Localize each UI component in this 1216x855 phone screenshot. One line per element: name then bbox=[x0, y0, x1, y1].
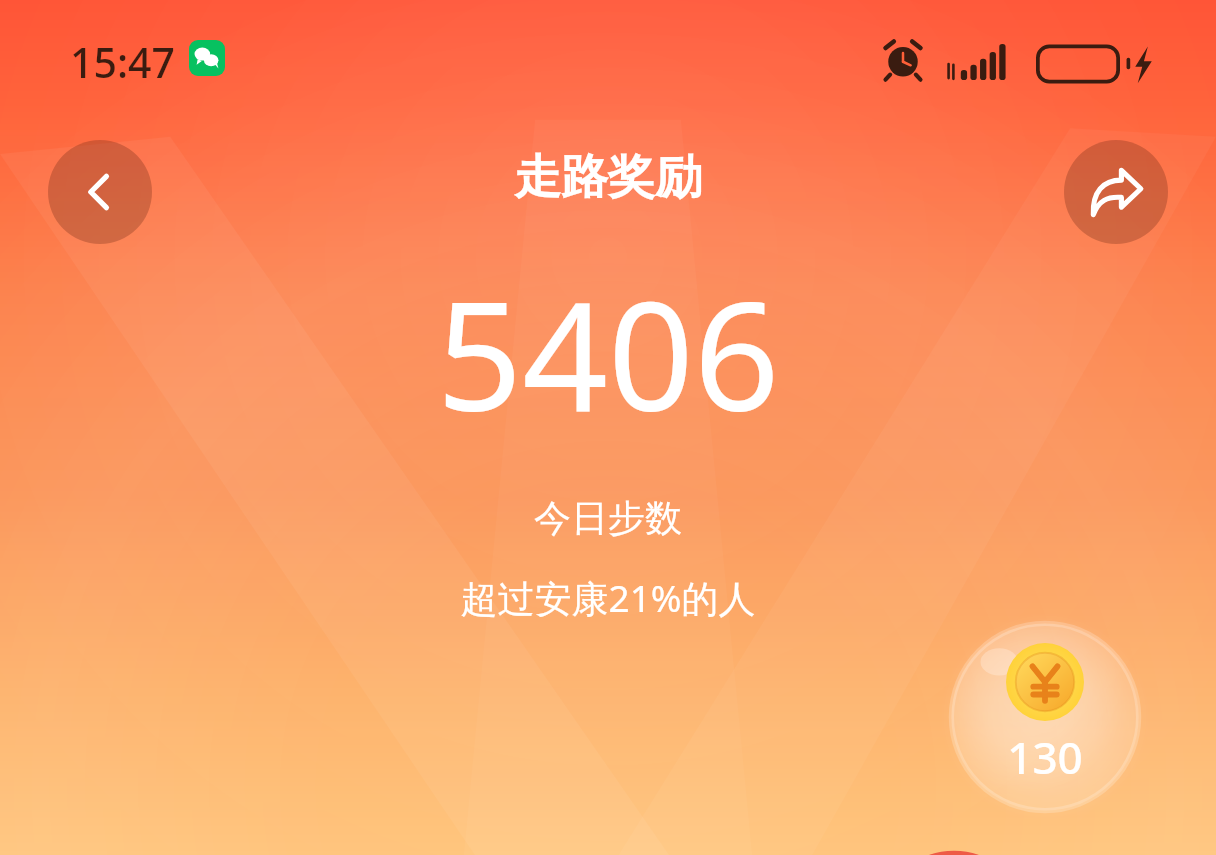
staticText: 走路奖励 bbox=[514, 148, 702, 207]
button[interactable]: Share bbox=[1064, 140, 1168, 244]
staticText: 130 bbox=[1007, 727, 1083, 787]
staticText: 今日步数 bbox=[534, 495, 682, 542]
staticText: 5406 bbox=[436, 251, 780, 455]
staticText: 15:47 bbox=[70, 34, 175, 90]
staticText: 超过安康21%的人 bbox=[460, 572, 756, 623]
button[interactable]: Back bbox=[48, 140, 152, 244]
button[interactable]: Collect 130 coins bbox=[941, 613, 1149, 821]
